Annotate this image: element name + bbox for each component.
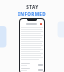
button[interactable] — [21, 68, 43, 71]
button[interactable] — [38, 64, 43, 66]
staticText: INFORMED — [18, 11, 46, 17]
button[interactable]: Notifications — [40, 23, 42, 25]
button[interactable] — [26, 23, 37, 25]
button[interactable] — [38, 69, 43, 71]
button[interactable] — [21, 63, 43, 66]
staticText: STAY — [26, 4, 39, 10]
